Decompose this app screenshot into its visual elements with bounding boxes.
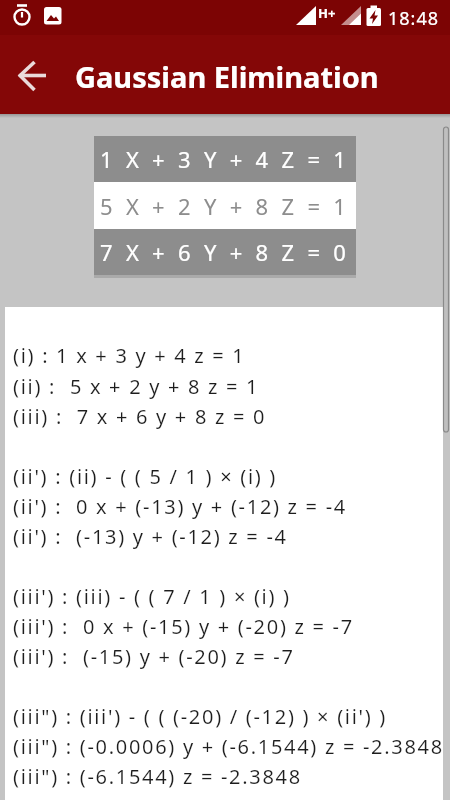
button[interactable]: 1 X + 3 Y + 4 Z = 1 [94,136,356,182]
staticText: 1 X + 3 Y + 4 Z = 1 [100,144,350,174]
staticText: H+ [318,4,336,22]
staticText: 18:48 [388,6,440,31]
staticText: 5 X + 2 Y + 8 Z = 1 [100,191,350,221]
staticText: (i) : 1 x + 3 y + 4 z = 1 (ii) : 5 x + 2… [13,342,443,789]
button[interactable]: 5 X + 2 Y + 8 Z = 1 [94,182,356,229]
button[interactable] [7,46,63,102]
staticText: 7 X + 6 Y + 8 Z = 0 [100,237,350,267]
button[interactable]: 7 X + 6 Y + 8 Z = 0 [94,229,356,275]
staticText: Gaussian Elimination [75,57,379,96]
